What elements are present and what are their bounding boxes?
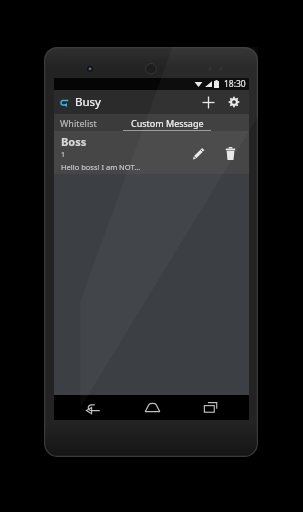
button[interactable]: Add (195, 90, 221, 114)
button[interactable]: Delete (217, 140, 243, 166)
button[interactable]: Whitelist (54, 114, 115, 131)
button[interactable]: Edit (185, 140, 211, 166)
button[interactable]: Back (73, 395, 113, 420)
staticText: Custom Message (131, 117, 204, 129)
button[interactable]: Custom Message (115, 114, 219, 131)
button[interactable]: Settings (221, 90, 247, 114)
staticText: Hello boss! I am NOT… (61, 162, 141, 172)
staticText: 18:30 (224, 78, 246, 90)
staticText: Whitelist (60, 117, 97, 129)
staticText: 1 (61, 150, 66, 160)
button[interactable]: Home (132, 395, 172, 420)
staticText: Boss (61, 134, 87, 149)
button[interactable]: Recent apps (190, 395, 230, 420)
button[interactable]: Busy (54, 90, 107, 114)
staticText: Busy (75, 94, 101, 110)
button[interactable]: Boss (54, 131, 249, 174)
